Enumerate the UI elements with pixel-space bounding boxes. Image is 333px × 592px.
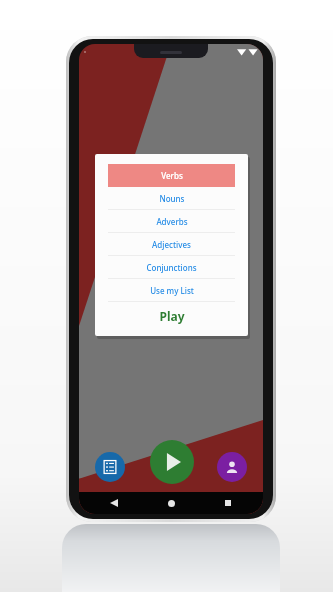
button[interactable]: Adjectives [108, 233, 235, 256]
button[interactable]: Back [105, 494, 123, 512]
button[interactable]: Play [150, 440, 194, 484]
staticText: Verbs [161, 170, 183, 181]
staticText: Adverbs [156, 216, 188, 227]
button[interactable]: Conjunctions [108, 256, 235, 279]
staticText: Play [159, 308, 185, 324]
button[interactable]: Use my List [108, 279, 235, 302]
button[interactable]: Profile [217, 452, 247, 482]
button[interactable]: Verbs [108, 164, 235, 187]
staticText: Use my List [150, 285, 194, 296]
button[interactable]: Play [108, 306, 235, 326]
button[interactable]: Nouns [108, 187, 235, 210]
staticText: Conjunctions [146, 262, 197, 273]
staticText: Adjectives [152, 239, 191, 250]
button[interactable]: Adverbs [108, 210, 235, 233]
button[interactable]: Home [162, 494, 180, 512]
button[interactable]: Recent apps [219, 494, 237, 512]
button[interactable]: Word lists [95, 452, 125, 482]
staticText: Nouns [159, 193, 185, 204]
